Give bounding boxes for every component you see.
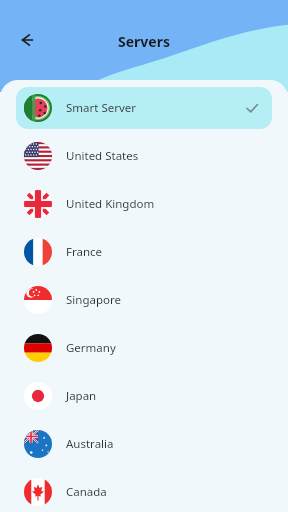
button[interactable]: United States <box>16 135 272 177</box>
staticText: Australia <box>66 436 264 452</box>
staticText: Germany <box>66 340 264 356</box>
button[interactable]: France <box>16 231 272 273</box>
button[interactable]: Canada <box>16 471 272 512</box>
button[interactable]: Back <box>6 20 46 60</box>
staticText: Japan <box>66 388 264 404</box>
staticText: Singapore <box>66 292 264 308</box>
button[interactable]: Singapore <box>16 279 272 321</box>
button[interactable]: Germany <box>16 327 272 369</box>
button[interactable]: Smart Server <box>16 87 272 129</box>
button[interactable]: Australia <box>16 423 272 465</box>
staticText: France <box>66 244 264 260</box>
staticText: United States <box>66 148 264 164</box>
staticText: Servers <box>118 32 170 51</box>
button[interactable]: Japan <box>16 375 272 417</box>
staticText: United Kingdom <box>66 196 264 212</box>
staticText: Canada <box>66 484 264 500</box>
button[interactable]: United Kingdom <box>16 183 272 225</box>
staticText: Smart Server <box>66 100 244 116</box>
